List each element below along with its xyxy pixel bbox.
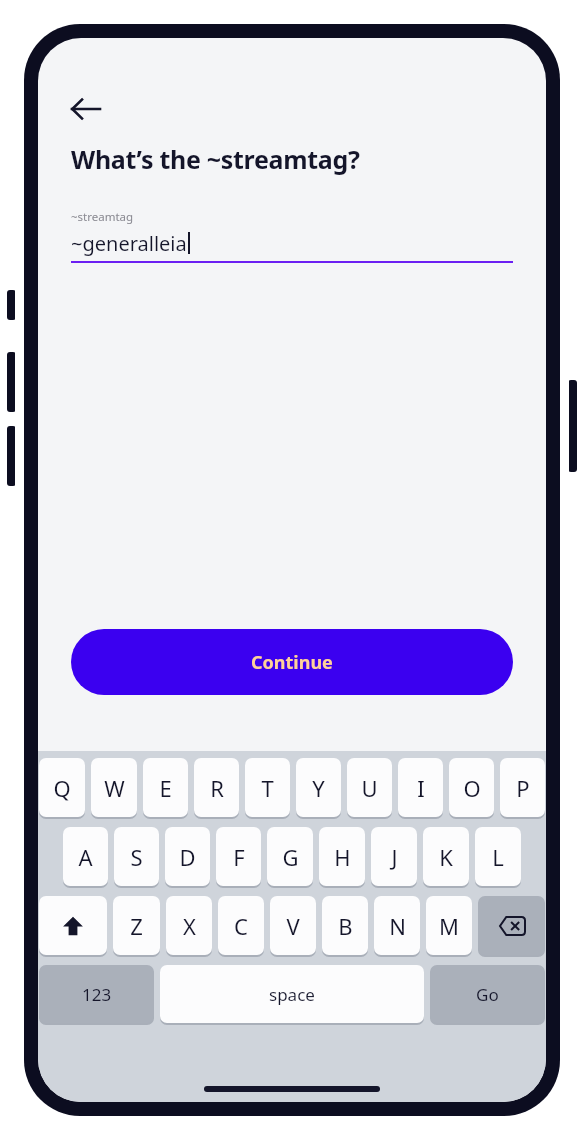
button[interactable]: ~generalleia [71,228,513,258]
staticText: K [439,842,453,872]
staticText: Q [53,773,71,803]
staticText: 123 [82,983,112,1006]
staticText: O [463,773,481,803]
button[interactable]: I [398,758,443,817]
button[interactable]: Z [113,896,160,955]
staticText: L [492,842,504,872]
button[interactable]: M [426,896,472,955]
button[interactable]: P [500,758,545,817]
button[interactable]: Y [296,758,341,817]
staticText: B [338,911,353,941]
staticText: C [234,911,248,941]
button[interactable]: C [218,896,264,955]
button[interactable]: R [194,758,239,817]
staticText: D [179,842,196,872]
staticText: X [183,911,196,941]
staticText: I [417,773,425,803]
button[interactable]: D [165,827,210,886]
button[interactable]: O [449,758,494,817]
button[interactable]: W [91,758,137,817]
button[interactable]: Q [39,758,85,817]
staticText: W [104,773,125,803]
button[interactable]: T [245,758,290,817]
staticText: T [261,773,274,803]
staticText: H [334,842,351,872]
staticText: F [233,842,245,872]
staticText: U [361,773,378,803]
button[interactable]: Continue [71,629,513,695]
button[interactable]: K [423,827,469,886]
button[interactable]: G [267,827,313,886]
button[interactable]: B [322,896,368,955]
staticText: R [210,773,224,803]
staticText: space [269,983,315,1006]
button[interactable]: Go [430,965,545,1023]
staticText: M [439,911,459,941]
staticText: ~generalleia [71,230,187,257]
staticText: Z [130,911,143,941]
staticText: J [391,842,398,872]
button[interactable]: E [143,758,188,817]
button[interactable]: N [374,896,420,955]
button[interactable]: V [270,896,316,955]
staticText: A [78,842,93,872]
button[interactable]: A [63,827,108,886]
staticText: Go [476,983,499,1006]
staticText: V [286,911,300,941]
staticText: E [159,773,172,803]
staticText: ~streamtag [71,209,134,225]
button[interactable]: L [475,827,521,886]
button[interactable]: J [371,827,417,886]
staticText: N [389,911,406,941]
button[interactable]: Shift [39,896,107,955]
button[interactable]: X [166,896,212,955]
button[interactable]: F [216,827,261,886]
button[interactable]: U [347,758,392,817]
button[interactable]: Backspace [478,896,545,955]
button[interactable]: S [114,827,159,886]
staticText: S [130,842,143,872]
button[interactable]: 123 [39,965,154,1023]
staticText: P [516,773,530,803]
staticText: Y [312,773,325,803]
staticText: What’s the ~streamtag? [71,142,360,176]
button[interactable]: Back [71,94,109,124]
button[interactable]: H [319,827,365,886]
staticText: Continue [251,650,333,675]
button[interactable]: space [160,965,424,1023]
staticText: G [282,842,299,872]
